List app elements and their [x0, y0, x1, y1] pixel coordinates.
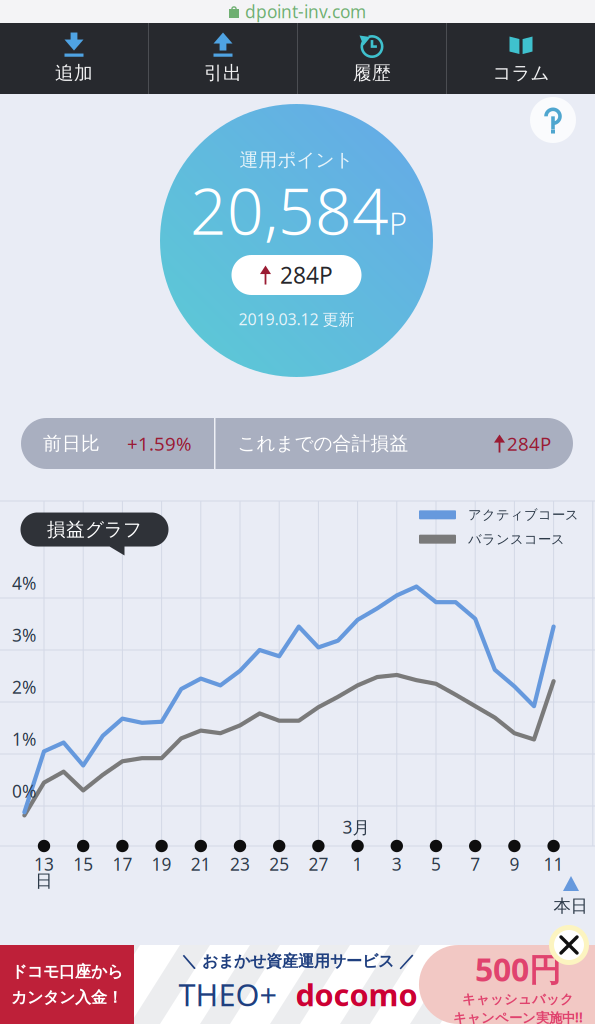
staticText: 損益グラフ — [47, 518, 142, 541]
staticText: 25 — [269, 852, 289, 875]
staticText: 13 — [34, 852, 54, 875]
staticText: 7 — [470, 852, 480, 875]
staticText: アクティブコース — [468, 507, 579, 523]
staticText: 1 — [353, 852, 363, 875]
staticText: 9 — [509, 852, 519, 875]
staticText: 17 — [112, 852, 132, 875]
button[interactable]: 追加 — [0, 23, 148, 94]
staticText: docomo — [295, 974, 417, 1015]
staticText: 0% — [12, 779, 36, 802]
staticText: 11 — [544, 852, 564, 875]
staticText: 284P — [507, 431, 551, 456]
staticText: バランスコース — [468, 531, 565, 547]
staticText: コラム — [492, 61, 549, 84]
staticText: 23 — [230, 852, 250, 875]
staticText: dpoint-inv.com — [245, 0, 366, 23]
staticText: 本日 — [553, 895, 587, 917]
staticText: キャンペーン実施中!! — [453, 1009, 583, 1024]
button[interactable]: コラム — [447, 23, 595, 94]
staticText: 引出 — [204, 61, 242, 84]
staticText: 履歴 — [353, 61, 391, 84]
staticText: 3 — [392, 852, 402, 875]
staticText: 27 — [308, 852, 328, 875]
staticText: THEO+ — [178, 974, 277, 1015]
staticText: 1% — [12, 727, 36, 750]
staticText: 19 — [152, 852, 172, 875]
staticText: 500円 — [475, 948, 561, 990]
staticText: 2% — [12, 675, 36, 698]
staticText: 5 — [431, 852, 441, 875]
staticText: 日 — [35, 870, 52, 892]
button[interactable]: 履歴 — [298, 23, 446, 94]
staticText: 284P — [280, 260, 333, 290]
button[interactable]: 引出 — [149, 23, 297, 94]
staticText: カンタン入金！ — [11, 987, 123, 1007]
staticText: 21 — [191, 852, 211, 875]
staticText: ドコモ口座から — [11, 962, 123, 981]
staticText: 20,584 — [190, 167, 389, 252]
staticText: 3月 — [342, 815, 369, 838]
staticText: 2019.03.12 更新 — [238, 308, 354, 330]
button[interactable]: ヘルプ — [526, 93, 580, 147]
staticText: 3% — [12, 623, 36, 646]
staticText: これまでの合計損益 — [237, 432, 408, 455]
staticText: 15 — [73, 852, 93, 875]
staticText: +1.59% — [127, 431, 192, 456]
staticText: 4% — [12, 571, 36, 594]
staticText: 追加 — [55, 61, 93, 84]
staticText: 前日比 — [43, 432, 100, 455]
staticText: P — [389, 203, 407, 243]
button[interactable]: 閉じる — [547, 923, 591, 967]
staticText: ＼ おまかせ資産運用サービス ／ — [181, 951, 415, 971]
staticText: キャッシュバック — [462, 991, 574, 1008]
staticText: 運用ポイント — [239, 148, 353, 171]
